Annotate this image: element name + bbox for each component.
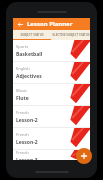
- staticText: French: [16, 110, 29, 115]
- button[interactable]: French: [13, 150, 90, 160]
- staticText: French: [16, 150, 29, 155]
- staticText: Sports: [16, 44, 29, 49]
- staticText: Music: [16, 88, 27, 93]
- button[interactable]: Sports: [13, 40, 90, 61]
- button[interactable]: French: [13, 106, 90, 127]
- staticText: Lesson-2: [16, 139, 38, 146]
- staticText: English: [16, 66, 30, 71]
- button[interactable]: French: [13, 128, 90, 149]
- button[interactable]: Add lesson: [76, 148, 92, 164]
- staticText: French: [16, 132, 29, 137]
- staticText: Flute: [16, 95, 29, 102]
- staticText: Basketball: [16, 51, 43, 58]
- staticText: ELECTIVE SUBJECT STATUS: [52, 33, 90, 37]
- staticText: Lesson-2: [16, 117, 38, 124]
- button[interactable]: Back: [16, 20, 25, 29]
- button[interactable]: English: [13, 62, 90, 83]
- button[interactable]: SUBJECT STATUS: [13, 30, 51, 39]
- button[interactable]: Music: [13, 84, 90, 105]
- staticText: Adjectives: [16, 73, 42, 80]
- button[interactable]: ELECTIVE SUBJECT STATUS: [51, 30, 90, 39]
- staticText: Lesson-3: [16, 157, 38, 160]
- staticText: SUBJECT STATUS: [20, 33, 44, 37]
- staticText: Lesson Planner: [27, 20, 73, 28]
